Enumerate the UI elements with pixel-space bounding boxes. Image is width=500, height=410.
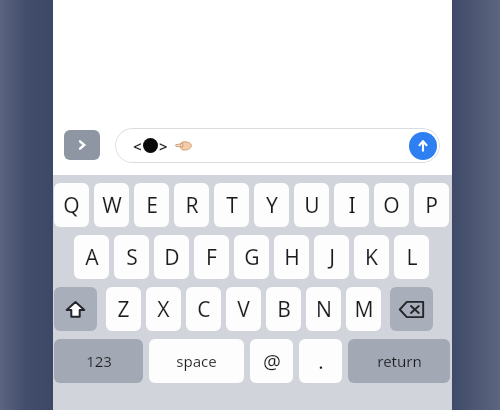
staticText: B [277,295,291,324]
button[interactable]: C [186,287,221,331]
button[interactable]: R [174,183,209,227]
staticText: F [206,243,217,272]
button[interactable]: U [294,183,329,227]
button[interactable]: S [114,235,149,279]
staticText: . [318,348,324,375]
button[interactable]: P [414,183,449,227]
staticText: T [226,191,238,220]
staticText: M [354,295,374,324]
staticText: V [237,295,250,324]
button[interactable]: Expand apps [64,130,100,160]
button[interactable]: < [115,128,440,163]
button[interactable]: Z [106,287,141,331]
button[interactable]: D [154,235,189,279]
button[interactable]: I [334,183,369,227]
staticText: D [164,243,180,272]
staticText: C [197,295,211,324]
button[interactable]: W [94,183,129,227]
staticText: H [284,243,300,272]
button[interactable]: @ [250,339,293,383]
button[interactable]: N [306,287,341,331]
button[interactable]: L [394,235,429,279]
staticText: O [383,191,400,220]
staticText: P [425,191,438,220]
staticText: A [85,243,99,272]
button[interactable]: Y [254,183,289,227]
button[interactable]: Shift [54,287,97,331]
button[interactable]: E [134,183,169,227]
staticText: R [185,191,199,220]
button[interactable]: M [346,287,381,331]
staticText: I [348,191,356,220]
button[interactable]: . [299,339,342,383]
staticText: 123 [86,351,112,371]
staticText: @ [263,348,281,375]
staticText: L [406,243,418,272]
staticText: G [244,243,260,272]
button[interactable]: A [74,235,109,279]
button[interactable]: K [354,235,389,279]
button[interactable]: B [266,287,301,331]
button[interactable]: J [314,235,349,279]
staticText: Q [63,191,80,220]
staticText: space [176,351,217,371]
staticText: E [146,191,158,220]
staticText: Y [266,191,278,220]
button[interactable]: X [146,287,181,331]
button[interactable]: G [234,235,269,279]
staticText: return [377,351,422,371]
button[interactable]: 123 [54,339,143,383]
button[interactable]: F [194,235,229,279]
button[interactable]: O [374,183,409,227]
staticText: U [304,191,320,220]
button[interactable]: Backspace [390,287,433,331]
button[interactable]: H [274,235,309,279]
staticText: J [329,243,335,272]
staticText: > [159,136,168,156]
staticText: Z [117,295,130,324]
staticText: W [102,191,122,220]
button[interactable]: return [348,339,450,383]
staticText: X [157,295,170,324]
button[interactable]: space [149,339,244,383]
staticText: S [126,243,138,272]
button[interactable]: V [226,287,261,331]
button[interactable]: Send [409,132,437,160]
button[interactable]: Q [54,183,89,227]
staticText: < [133,136,142,156]
staticText: K [365,243,378,272]
staticText: N [316,295,332,324]
button[interactable]: T [214,183,249,227]
